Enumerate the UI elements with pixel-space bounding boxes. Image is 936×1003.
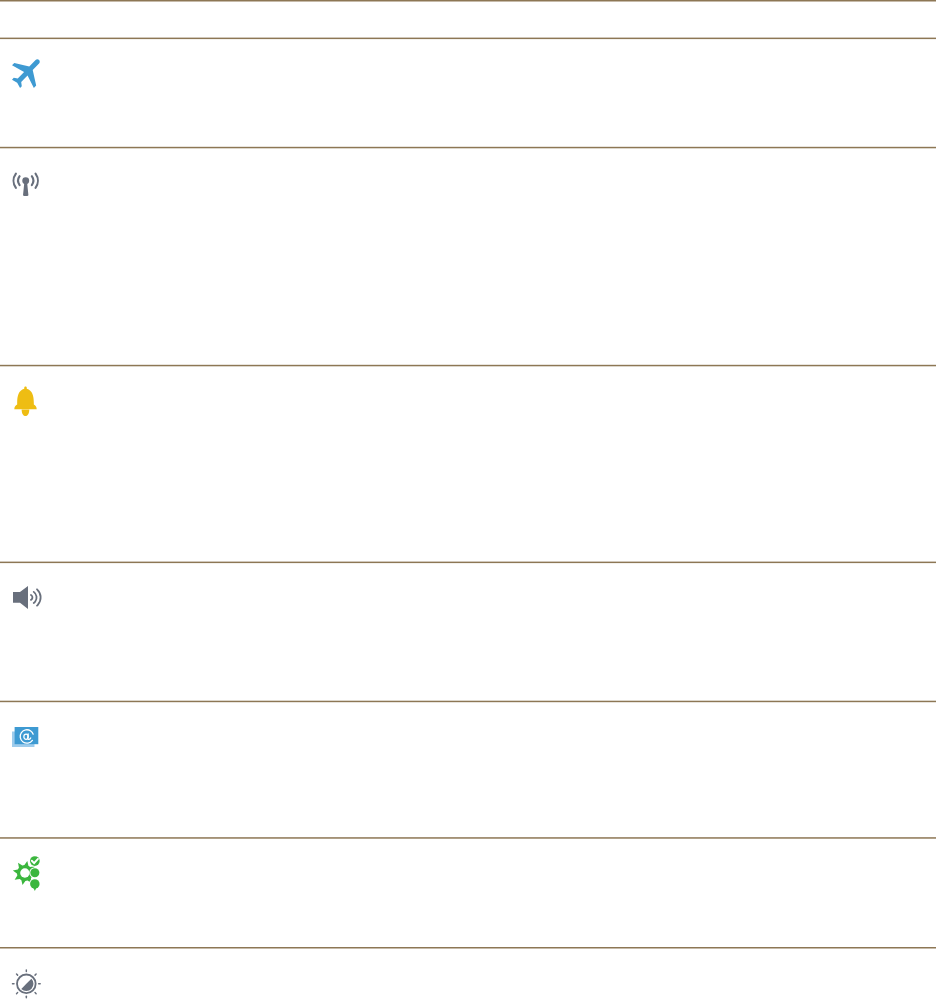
button[interactable]: Privacy xyxy=(0,837,936,947)
button[interactable]: Notifications xyxy=(0,365,936,562)
button[interactable]: Sound & vibration xyxy=(0,562,936,701)
button[interactable]: Airplane mode xyxy=(0,38,936,147)
button[interactable]: Accounts xyxy=(0,701,936,838)
button[interactable]: Display xyxy=(0,947,936,1003)
button[interactable]: Network & internet xyxy=(0,147,936,365)
button[interactable]: Settings xyxy=(0,0,936,38)
